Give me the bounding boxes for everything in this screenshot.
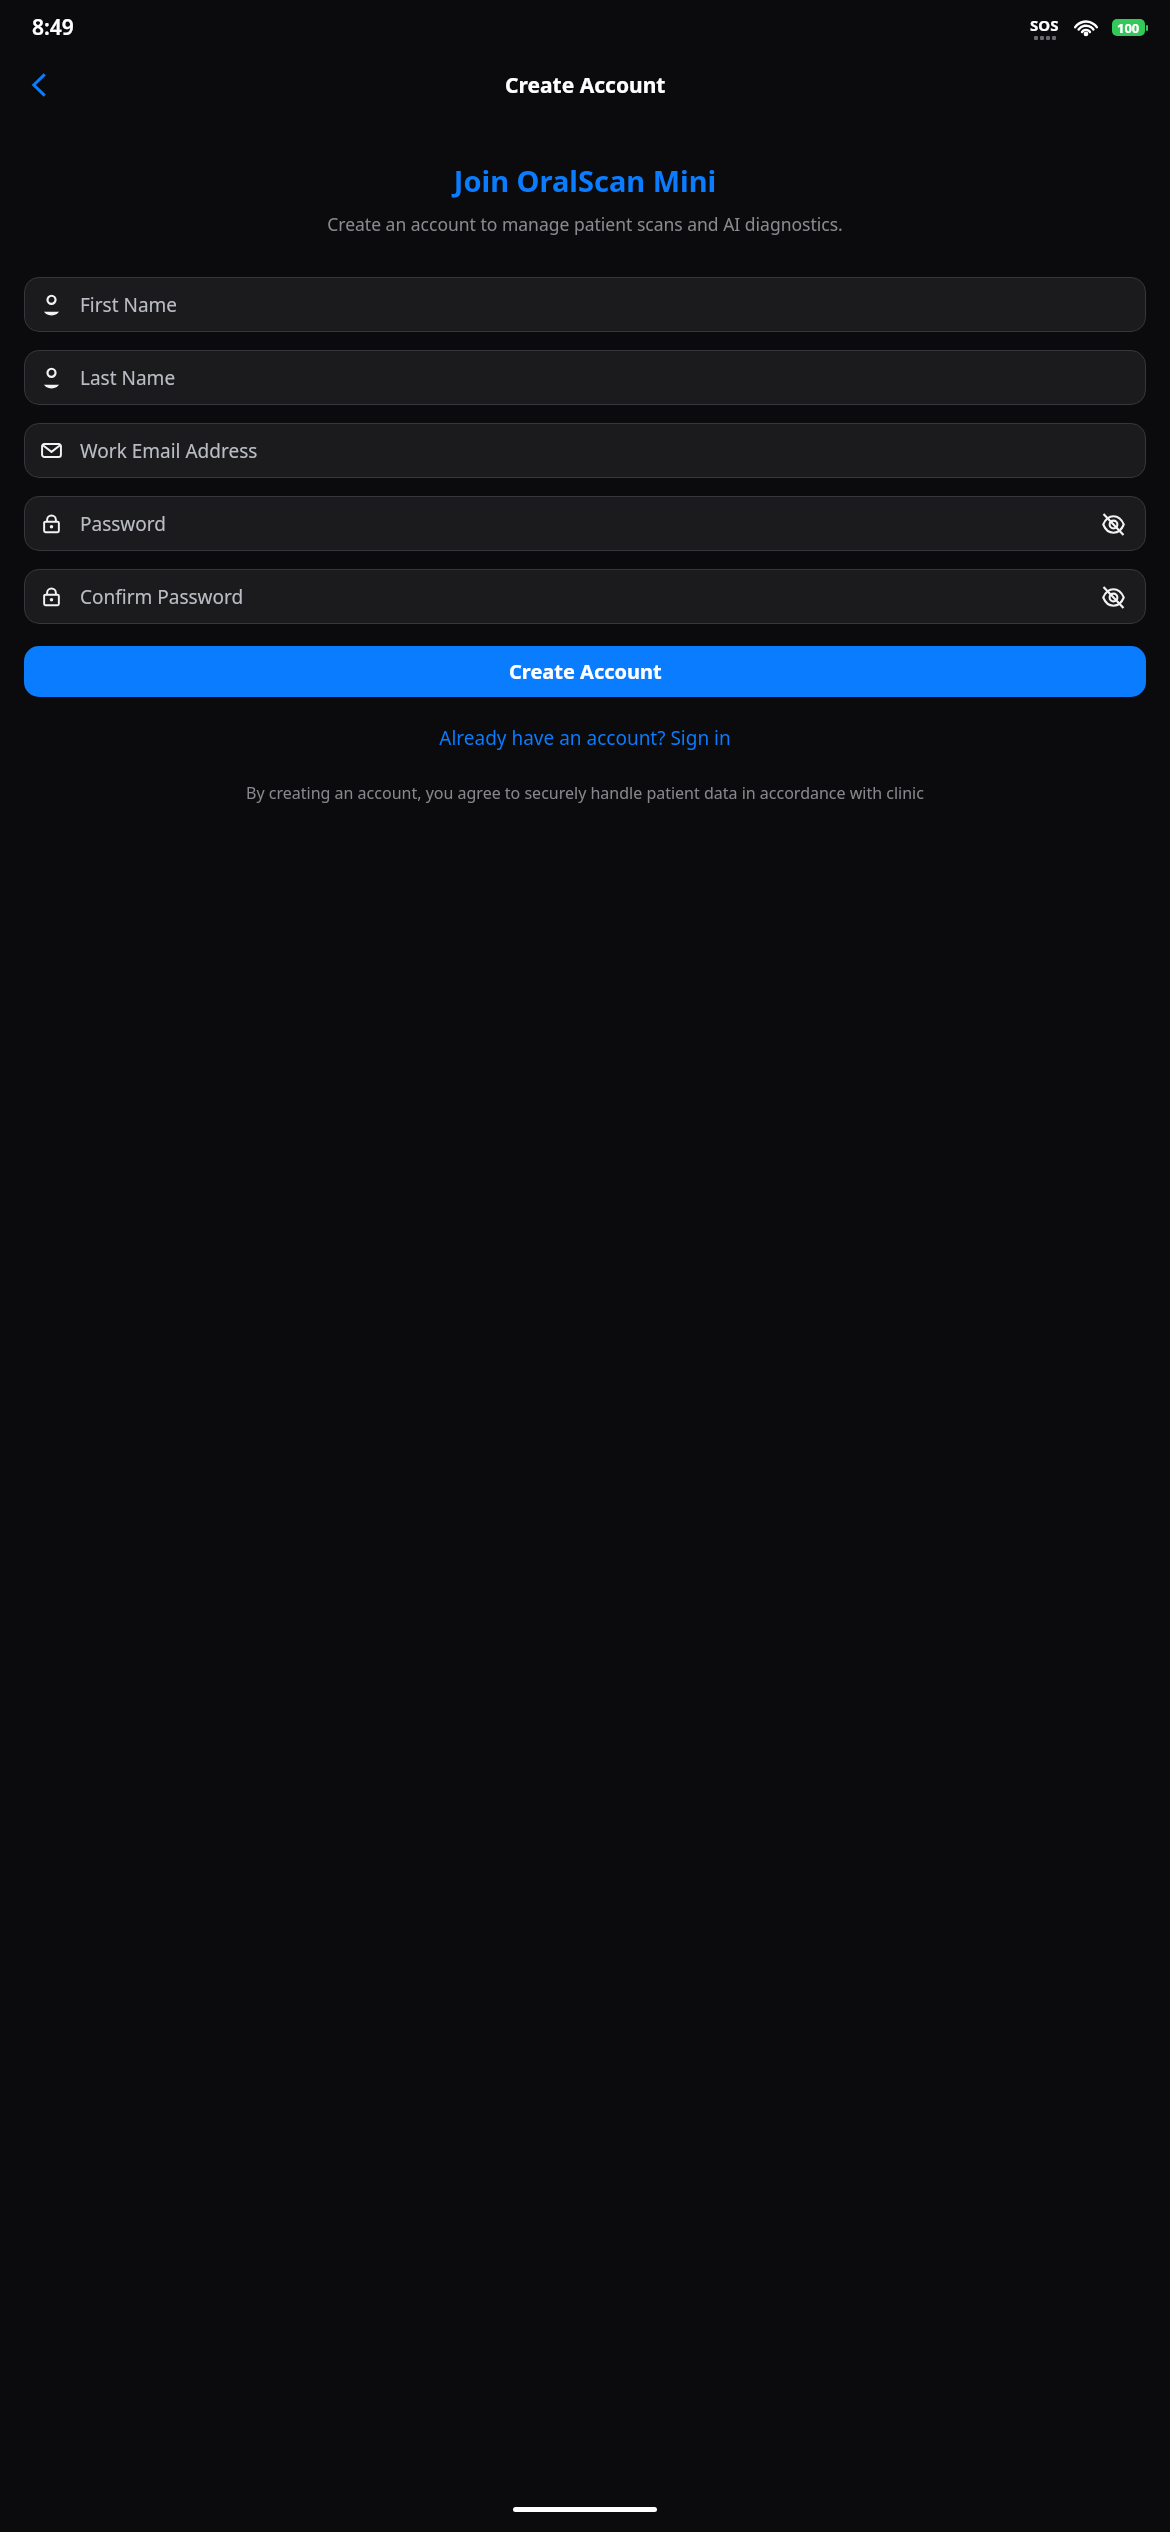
staticText: Create Account [509,658,662,685]
button[interactable]: Already have an account? Sign in [24,717,1146,759]
staticText: First Name [80,292,1130,318]
staticText: Last Name [80,365,1130,391]
staticText: Confirm Password [80,584,1096,610]
staticText: Create an account to manage patient scan… [20,212,1150,236]
button[interactable]: Confirm Password [24,569,1146,624]
button[interactable]: Password [24,496,1146,551]
staticText: Join OralScan Mini [0,161,1170,200]
button[interactable]: Work Email Address [24,423,1146,478]
staticText: Create Account [505,71,666,100]
button[interactable]: First Name [24,277,1146,332]
staticText: 100 [1117,19,1140,36]
staticText: Password [80,511,1096,537]
staticText: By creating an account, you agree to sec… [28,782,1142,804]
button[interactable]: Last Name [24,350,1146,405]
button[interactable]: Back [10,56,68,114]
button[interactable]: Create Account [24,646,1146,697]
staticText: SOS [1030,15,1059,35]
button[interactable]: Show password [1096,507,1130,541]
button[interactable]: Show password [1096,580,1130,614]
staticText: Already have an account? Sign in [439,725,731,751]
staticText: Work Email Address [80,438,1130,464]
staticText: 8:49 [32,13,74,42]
